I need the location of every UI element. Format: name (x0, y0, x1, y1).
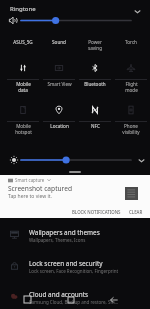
staticText: Phone (124, 123, 138, 129)
staticText: Cloud and accounts (29, 290, 89, 299)
button[interactable]: Torch (113, 16, 149, 58)
staticText: mode (125, 87, 138, 93)
button[interactable]: Smart capture (0, 175, 150, 218)
button[interactable]: Recents (20, 292, 35, 307)
staticText: BLOCK NOTIFICATIONS (72, 209, 121, 215)
button[interactable]: Brightness settings (136, 155, 146, 165)
staticText: Mobile (16, 81, 31, 87)
staticText: Ringtone (10, 5, 36, 13)
button[interactable]: Cloud and accounts (0, 282, 150, 309)
staticText: Flight (125, 81, 138, 87)
staticText: Samsung Cloud, Backup and restore, Sm… (29, 299, 119, 305)
staticText: hotspot (15, 129, 32, 135)
button[interactable]: Mobile (5, 100, 41, 142)
button[interactable]: ASUS_5G (5, 16, 41, 58)
staticText: Location (50, 123, 69, 129)
staticText: Lock screen and security (29, 259, 103, 268)
staticText: Sound (52, 39, 66, 45)
button[interactable]: BLOCK NOTIFICATIONS (70, 208, 123, 216)
button[interactable]: Mobile (5, 58, 41, 100)
button[interactable]: Bluetooth (77, 58, 113, 100)
button[interactable]: Sound (41, 16, 77, 58)
button[interactable]: Lock screen and security (0, 251, 150, 282)
button[interactable]: Power (77, 16, 113, 58)
button[interactable]: Back (106, 292, 121, 307)
staticText: Wallpapers and themes (29, 228, 100, 237)
staticText: Bluetooth (84, 81, 106, 87)
staticText: Screenshot captured (8, 184, 72, 193)
staticText: CLEAR (129, 209, 143, 215)
button[interactable]: Home (63, 292, 78, 307)
staticText: NFC (91, 123, 100, 129)
button[interactable]: NFC (77, 100, 113, 142)
button[interactable]: Wallpapers and themes (0, 220, 150, 251)
button[interactable]: Phone (113, 100, 149, 142)
button[interactable]: CLEAR (127, 208, 145, 216)
staticText: data (18, 87, 28, 93)
staticText: Power (88, 39, 102, 45)
button[interactable]: Flight (113, 58, 149, 100)
button[interactable]: Screen brightness (21, 155, 131, 165)
button[interactable]: Location (41, 100, 77, 142)
staticText: saving (88, 45, 102, 51)
staticText: Wallpapers, Themes, Icons (29, 237, 86, 243)
staticText: ASUS_5G (13, 39, 33, 45)
button[interactable]: Ringtone volume (21, 15, 131, 26)
staticText: Smart capture (15, 177, 45, 183)
button[interactable]: Expand volume panel (132, 6, 143, 17)
staticText: Tap here to view it. (8, 193, 52, 200)
staticText: visibility (122, 129, 140, 135)
button[interactable]: Smart View (41, 58, 77, 100)
staticText: Lock screen, Face Recognition, Fingerpri… (29, 268, 119, 274)
staticText: Torch (125, 39, 137, 45)
staticText: Mobile (16, 123, 31, 129)
staticText: Smart View (47, 81, 72, 87)
